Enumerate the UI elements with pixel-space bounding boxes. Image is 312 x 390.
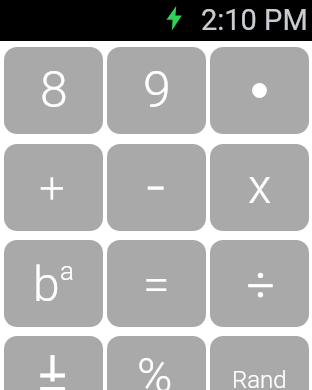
button[interactable] [4,144,103,231]
staticText: Rand [232,366,287,390]
staticText: = [143,256,170,312]
button[interactable] [4,336,103,390]
staticText: 9 [143,61,171,120]
button[interactable]: x [210,144,309,231]
staticText: % [137,347,173,390]
staticText: x [248,158,272,214]
staticText: b [33,256,60,312]
staticText: 8 [40,61,68,120]
button[interactable]: = [107,240,206,327]
button[interactable] [210,240,309,327]
button[interactable]: 8 [4,47,103,134]
button[interactable]: b [4,240,103,327]
button[interactable]: Rand [210,336,309,390]
staticText: 2:10 PM [201,3,308,37]
button[interactable]: 9 [107,47,206,134]
button[interactable] [107,144,206,231]
button[interactable] [210,47,309,134]
staticText: a [60,256,74,286]
button[interactable]: % [107,336,206,390]
